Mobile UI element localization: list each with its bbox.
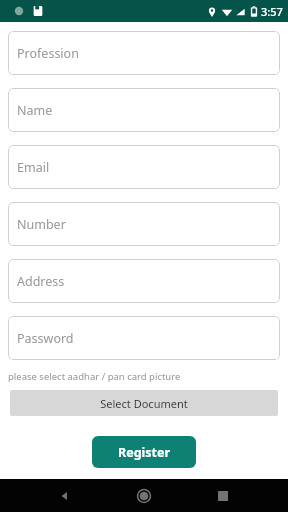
staticText: Name [17, 102, 53, 119]
staticText: Register [118, 444, 171, 461]
staticText: please select aadhar / pan card picture [8, 370, 181, 383]
staticText: 3:57 [261, 4, 283, 19]
button[interactable]: Profession [8, 31, 280, 75]
staticText: Select Document [100, 396, 188, 411]
button[interactable]: Select Document [10, 390, 278, 416]
button[interactable]: Recent apps [206, 479, 240, 512]
staticText: Password [17, 330, 74, 347]
button[interactable]: Password [8, 316, 280, 360]
button[interactable]: Back [48, 479, 82, 512]
staticText: Address [17, 273, 65, 290]
button[interactable]: Email [8, 145, 280, 189]
button[interactable]: Address [8, 259, 280, 303]
staticText: Number [17, 216, 66, 233]
staticText: Email [17, 159, 50, 176]
button[interactable]: Home [127, 479, 161, 512]
button[interactable]: Register [92, 436, 196, 468]
button[interactable]: Name [8, 88, 280, 132]
staticText: Profession [17, 45, 79, 62]
button[interactable]: Number [8, 202, 280, 246]
